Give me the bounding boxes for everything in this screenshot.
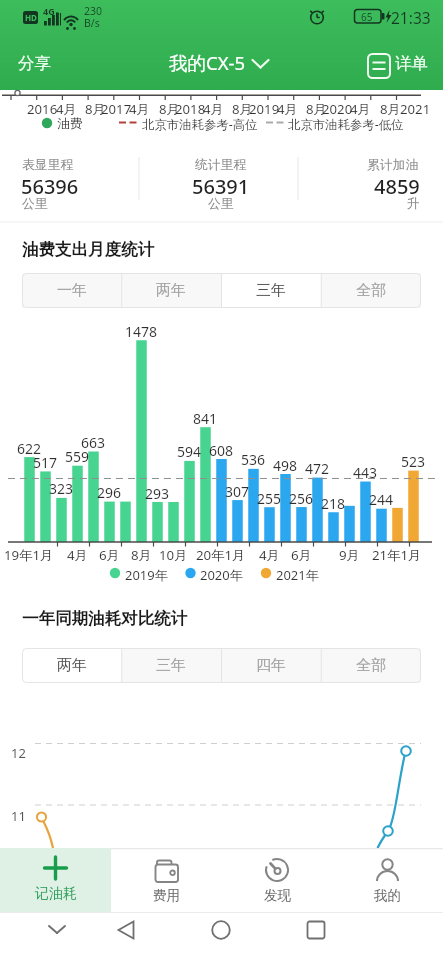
button[interactable]: 两年 — [121, 273, 221, 308]
staticText: 一年同期油耗对比统计 — [22, 608, 187, 629]
staticText: 608 — [209, 441, 234, 460]
staticText: 表显里程 — [22, 157, 74, 173]
staticText: 20年1月 — [196, 546, 246, 564]
staticText: 472 — [305, 459, 330, 478]
staticText: 4月 — [259, 546, 280, 564]
staticText: 2019 — [249, 100, 280, 118]
button[interactable] — [296, 912, 336, 948]
staticText: 2021 — [400, 100, 431, 118]
button[interactable]: 三年 — [121, 648, 221, 683]
staticText: 443 — [353, 463, 378, 482]
button[interactable]: 两年 — [22, 648, 121, 683]
staticText: 622 — [17, 439, 42, 458]
staticText: 发现 — [264, 887, 291, 904]
staticText: 升 — [407, 196, 420, 212]
button[interactable]: 详单 — [360, 46, 435, 80]
staticText: 218 — [321, 494, 346, 513]
staticText: 2021年 — [276, 566, 319, 584]
staticText: 6月 — [291, 546, 312, 564]
button[interactable]: 全部 — [321, 648, 421, 683]
staticText: 我的 — [374, 887, 401, 904]
staticText: 4859 — [374, 173, 420, 200]
staticText: 三年 — [156, 656, 186, 675]
staticText: 统计里程 — [195, 157, 247, 173]
staticText: 21:33 — [391, 7, 431, 28]
button[interactable]: 记油耗 — [0, 848, 111, 912]
staticText: 4月 — [129, 100, 150, 118]
staticText: 4月 — [350, 100, 371, 118]
staticText: 594 — [177, 442, 202, 461]
staticText: 536 — [241, 450, 266, 469]
staticText: 公里 — [22, 196, 48, 212]
staticText: 全部 — [356, 281, 386, 300]
staticText: 2016 — [27, 100, 58, 118]
staticText: 4月 — [67, 546, 88, 564]
button[interactable] — [37, 912, 77, 948]
staticText: B/s — [84, 16, 100, 30]
button[interactable]: 发现 — [222, 848, 333, 912]
staticText: 12 — [11, 744, 26, 762]
staticText: 4G — [43, 5, 55, 17]
staticText: 244 — [369, 490, 394, 509]
staticText: 307 — [225, 482, 250, 501]
staticText: 2017 — [101, 100, 132, 118]
staticText: 4月 — [203, 100, 224, 118]
staticText: 8月 — [380, 100, 401, 118]
staticText: 523 — [401, 452, 426, 471]
staticText: 56396 — [21, 173, 79, 200]
staticText: 8月 — [131, 546, 152, 564]
button[interactable]: 我的 — [332, 848, 443, 912]
staticText: 8月 — [306, 100, 327, 118]
staticText: 北京市油耗参考-高位 — [142, 116, 258, 133]
button[interactable]: 三年 — [221, 273, 321, 308]
staticText: 256 — [289, 489, 314, 508]
staticText: 4月 — [277, 100, 298, 118]
staticText: 255 — [257, 489, 282, 508]
staticText: 分享 — [18, 53, 51, 74]
staticText: 8月 — [85, 100, 106, 118]
button[interactable]: 费用 — [111, 848, 222, 912]
staticText: 2020 — [322, 100, 353, 118]
staticText: 296 — [97, 483, 122, 502]
staticText: 我的CX-5 — [169, 50, 246, 75]
staticText: 8月 — [159, 100, 180, 118]
staticText: 记油耗 — [35, 885, 77, 903]
staticText: 11 — [11, 807, 26, 825]
staticText: 10月 — [159, 546, 188, 564]
staticText: 全部 — [356, 656, 386, 675]
staticText: 19年1月 — [4, 546, 54, 564]
staticText: 6月 — [99, 546, 120, 564]
staticText: 累计加油 — [367, 157, 419, 173]
button[interactable]: 我的CX-5 — [150, 44, 280, 80]
staticText: 663 — [81, 433, 106, 452]
staticText: 8月 — [232, 100, 253, 118]
staticText: 2020年 — [200, 566, 243, 584]
staticText: 559 — [65, 447, 90, 466]
staticText: HD — [25, 12, 37, 23]
staticText: 油费支出月度统计 — [22, 239, 154, 260]
button[interactable]: 四年 — [221, 648, 321, 683]
button[interactable] — [201, 912, 241, 948]
button[interactable]: 全部 — [321, 273, 421, 308]
staticText: 841 — [193, 409, 218, 428]
staticText: 4月 — [56, 100, 77, 118]
staticText: 2019年 — [125, 566, 168, 584]
button[interactable]: 分享 — [6, 46, 70, 80]
staticText: 油费 — [57, 115, 83, 131]
staticText: 详单 — [395, 53, 428, 74]
staticText: 293 — [145, 484, 170, 503]
staticText: 498 — [273, 456, 298, 475]
staticText: 21年1月 — [372, 546, 422, 564]
staticText: 费用 — [153, 887, 180, 904]
staticText: 230 — [84, 4, 103, 18]
staticText: 323 — [49, 479, 74, 498]
button[interactable] — [106, 912, 146, 948]
staticText: 65 — [361, 10, 373, 24]
staticText: 公里 — [208, 196, 234, 212]
staticText: 三年 — [256, 281, 286, 300]
staticText: 517 — [33, 453, 58, 472]
button[interactable]: 一年 — [22, 273, 121, 308]
staticText: 9月 — [339, 546, 360, 564]
staticText: 两年 — [156, 281, 186, 300]
staticText: 北京市油耗参考-低位 — [288, 116, 404, 133]
